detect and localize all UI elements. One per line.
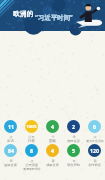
button[interactable]: 5 xyxy=(63,144,84,167)
button[interactable]: 4 xyxy=(42,144,63,167)
staticText: 重大外交活动 xyxy=(86,139,104,143)
staticText: 项 xyxy=(51,159,55,163)
staticText: 120 xyxy=(90,147,99,154)
staticText: 次 xyxy=(30,159,34,163)
staticText: 5 xyxy=(72,147,75,154)
staticText: 双边会谈 xyxy=(4,163,17,167)
button[interactable]: 120 xyxy=(84,144,105,167)
staticText: 6 xyxy=(93,123,96,130)
staticText: 国家 xyxy=(49,139,56,143)
staticText: “习近平时间” xyxy=(35,13,73,22)
staticText: 场 xyxy=(9,159,13,163)
button[interactable]: 11 xyxy=(0,120,21,143)
staticText: 重要国际场合 xyxy=(23,167,41,171)
staticText: 行程 xyxy=(28,139,35,143)
staticText: 出访 xyxy=(7,139,14,143)
button[interactable]: 2 xyxy=(63,120,84,143)
staticText: 国际会议 xyxy=(67,139,80,143)
staticText: 8 xyxy=(30,147,33,154)
staticText: 份 xyxy=(72,159,76,163)
button[interactable]: 8 xyxy=(21,144,42,171)
staticText: 合作协议 xyxy=(88,163,101,167)
button[interactable]: 4 xyxy=(42,120,63,143)
button[interactable]: 84 xyxy=(0,144,21,167)
button[interactable]: 19675 xyxy=(21,120,42,143)
staticText: 成果文件 xyxy=(46,163,59,167)
staticText: 联合声明 xyxy=(67,163,80,167)
staticText: 19675 xyxy=(26,124,37,129)
staticText: 4 xyxy=(51,147,54,154)
staticText: 11 xyxy=(8,123,14,130)
staticText: 欧洲的 xyxy=(13,9,34,18)
staticText: 2 xyxy=(72,123,75,130)
staticText: 84 xyxy=(8,147,14,154)
staticText: 项 xyxy=(93,159,97,163)
staticText: 公开演讲 xyxy=(25,163,38,167)
staticText: 公里 xyxy=(28,135,35,139)
staticText: 次 xyxy=(93,135,97,139)
staticText: 4 xyxy=(51,123,54,130)
staticText: 次 xyxy=(9,135,13,139)
staticText: 个 xyxy=(51,135,55,139)
staticText: 场 xyxy=(72,135,76,139)
button[interactable]: 6 xyxy=(84,120,105,143)
